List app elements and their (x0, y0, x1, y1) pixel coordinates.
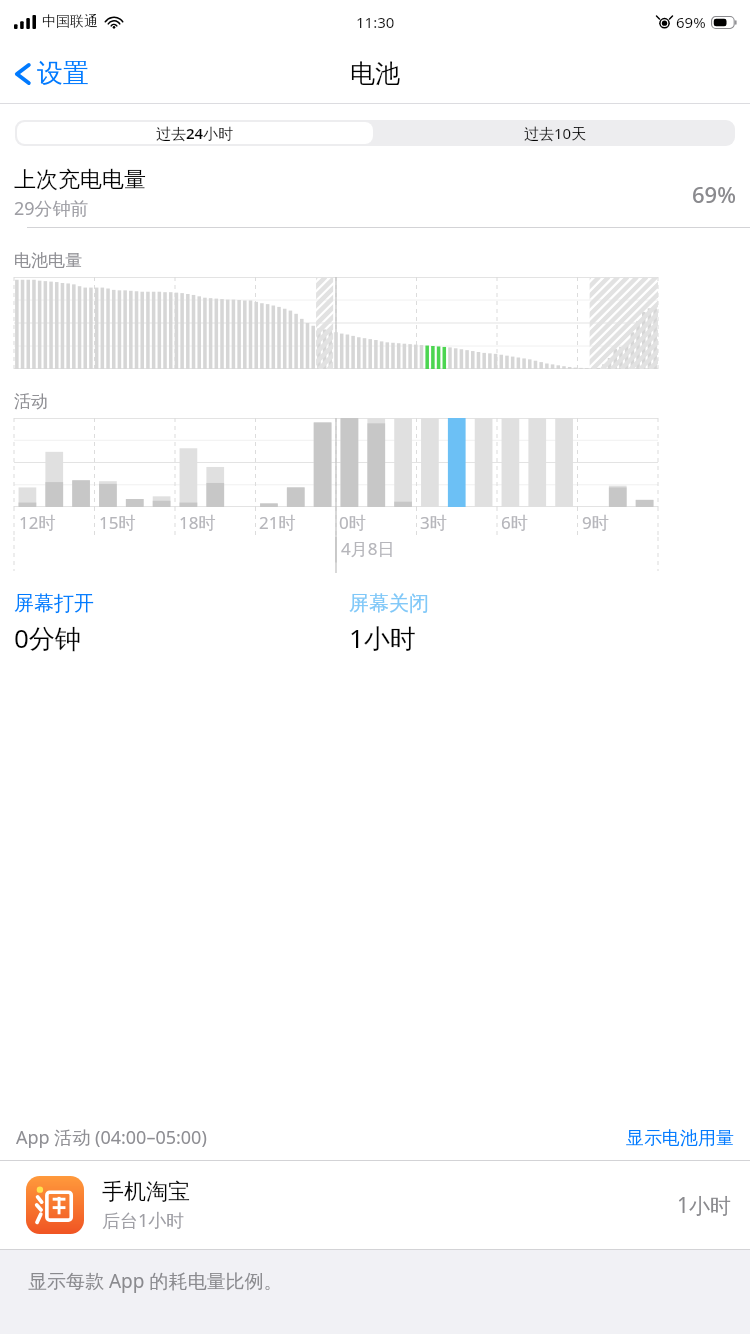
staticText: 1小时 (349, 620, 416, 656)
staticText: 29分钟前 (14, 196, 89, 221)
staticText: 后台1小时 (102, 1208, 185, 1233)
staticText: 活动 (14, 391, 48, 412)
staticText: 屏幕关闭 (349, 591, 429, 616)
staticText: 15时 (99, 511, 136, 534)
staticText: 手机淘宝 (102, 1178, 190, 1206)
staticText: 显示电池用量 (626, 1127, 734, 1150)
staticText: 6时 (501, 511, 528, 534)
staticText: 9时 (582, 511, 609, 534)
staticText: 1小时 (677, 1191, 732, 1220)
staticText: 0时 (339, 511, 366, 534)
staticText: 69% (676, 12, 706, 32)
staticText: 上次充电电量 (14, 166, 146, 194)
staticText: 21时 (259, 511, 296, 534)
staticText: 显示每款 App 的耗电量比例。 (28, 1268, 283, 1294)
staticText: 0分钟 (14, 620, 81, 656)
staticText: 11:30 (356, 12, 395, 32)
staticText: 18时 (179, 511, 216, 534)
staticText: 69% (692, 179, 736, 209)
staticText: 12时 (19, 511, 56, 534)
staticText: 电池 (350, 58, 400, 89)
staticText: App 活动 (04:00–05:00) (16, 1125, 626, 1150)
button[interactable]: 显示电池用量 (626, 1127, 734, 1150)
staticText: 4月8日 (341, 537, 395, 560)
staticText: 设置 (37, 57, 89, 90)
staticText: 3时 (420, 511, 447, 534)
staticText: 电池电量 (14, 250, 82, 271)
button[interactable]: 手机淘宝 (0, 1161, 750, 1249)
button[interactable]: Back (8, 51, 95, 96)
other: Back (14, 59, 32, 89)
staticText: 中国联通 (42, 13, 98, 31)
staticText: 过去10天 (524, 123, 587, 143)
staticText: 屏幕打开 (14, 591, 94, 616)
button[interactable]: 过去10天 (375, 120, 735, 146)
button[interactable]: 过去24小时 (17, 122, 373, 144)
staticText: 过去24小时 (156, 123, 234, 143)
